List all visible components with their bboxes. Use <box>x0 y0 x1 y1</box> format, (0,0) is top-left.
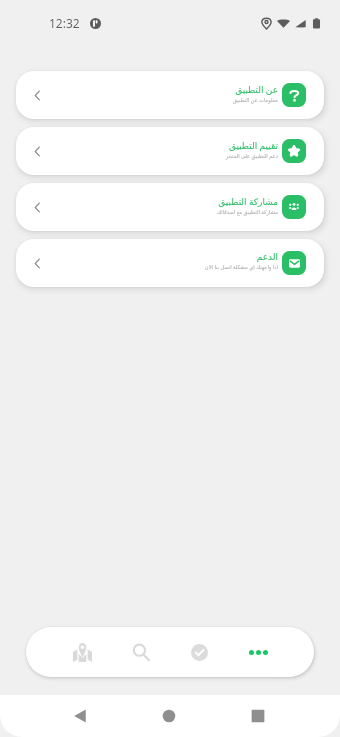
button[interactable]: More options <box>243 637 273 667</box>
button[interactable]: Home <box>157 704 181 728</box>
staticText: مشاركة التطبيق <box>218 195 278 207</box>
staticText: 12:32 <box>49 15 80 31</box>
button[interactable]: Search <box>126 637 156 667</box>
staticText: تقييم التطبيق <box>228 139 278 151</box>
button[interactable]: Done <box>184 637 214 667</box>
other: Open عن التطبيق <box>31 90 42 101</box>
staticText: معلومات عن التطبيق <box>233 96 278 103</box>
button[interactable]: Open مشاركة التطبيق <box>16 183 324 231</box>
button[interactable]: Map <box>67 637 97 667</box>
other: Open مشاركة التطبيق <box>31 202 42 213</box>
button[interactable]: Open عن التطبيق <box>16 71 324 119</box>
other: Open الدعم <box>31 258 42 269</box>
other: Open تقييم التطبيق <box>31 146 42 157</box>
staticText: دعم التطبيق على المتجر <box>225 152 278 159</box>
button[interactable]: Recent apps <box>246 704 270 728</box>
staticText: مشاركة التطبيق مع اصدقائك <box>216 208 278 215</box>
staticText: الدعم <box>256 252 278 262</box>
button[interactable]: Back <box>68 704 92 728</box>
staticText: اذا واجهتك اي مشكلة اتصل بنا الان <box>204 263 278 270</box>
staticText: عن التطبيق <box>235 83 278 95</box>
button[interactable]: Open تقييم التطبيق <box>16 127 324 175</box>
button[interactable]: Open الدعم <box>16 239 324 287</box>
